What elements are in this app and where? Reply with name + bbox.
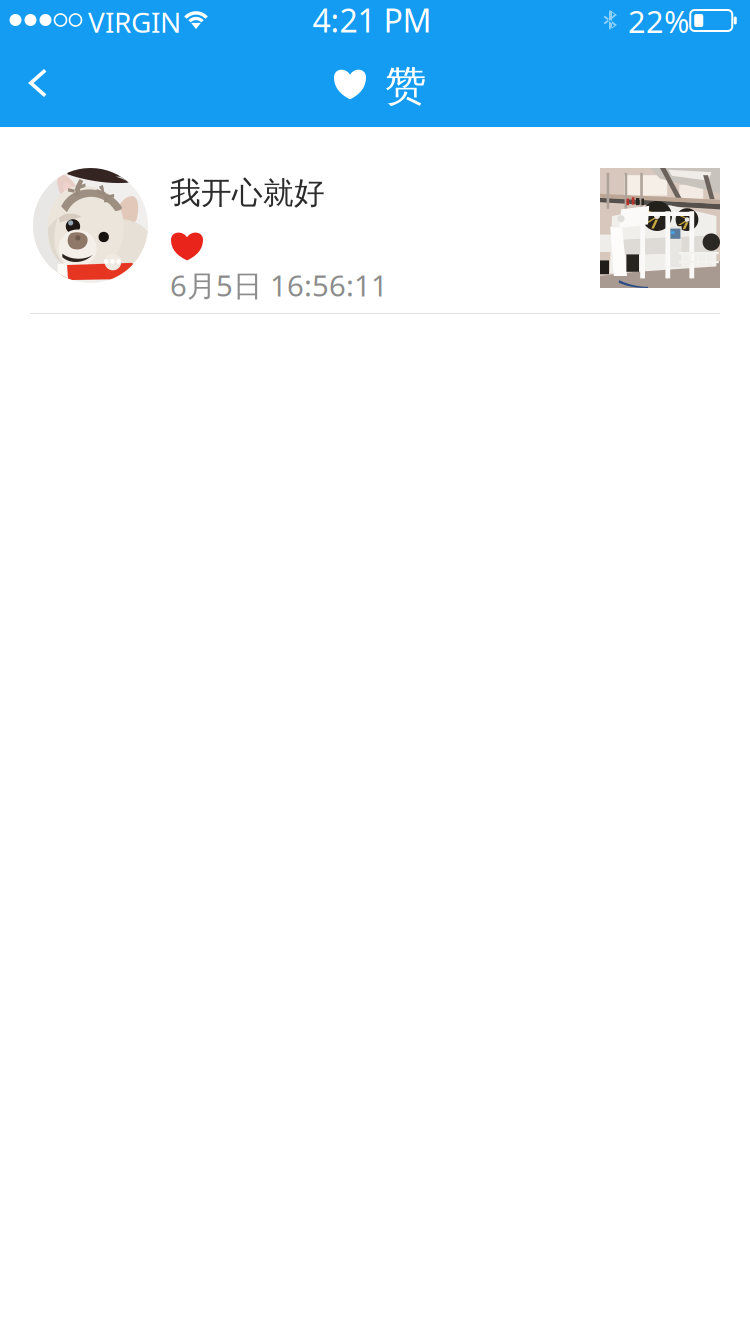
staticText: 赞 (385, 61, 426, 111)
staticText: 6月5日 16:56:11 (170, 265, 388, 304)
staticText: 我开心就好 (170, 174, 325, 212)
button[interactable]: 我开心就好 (0, 127, 750, 314)
staticText: 22% (628, 1, 689, 41)
staticText: VIRGIN (88, 3, 181, 41)
staticText: 4:21 PM (312, 0, 431, 41)
button[interactable]: Back (0, 40, 76, 116)
